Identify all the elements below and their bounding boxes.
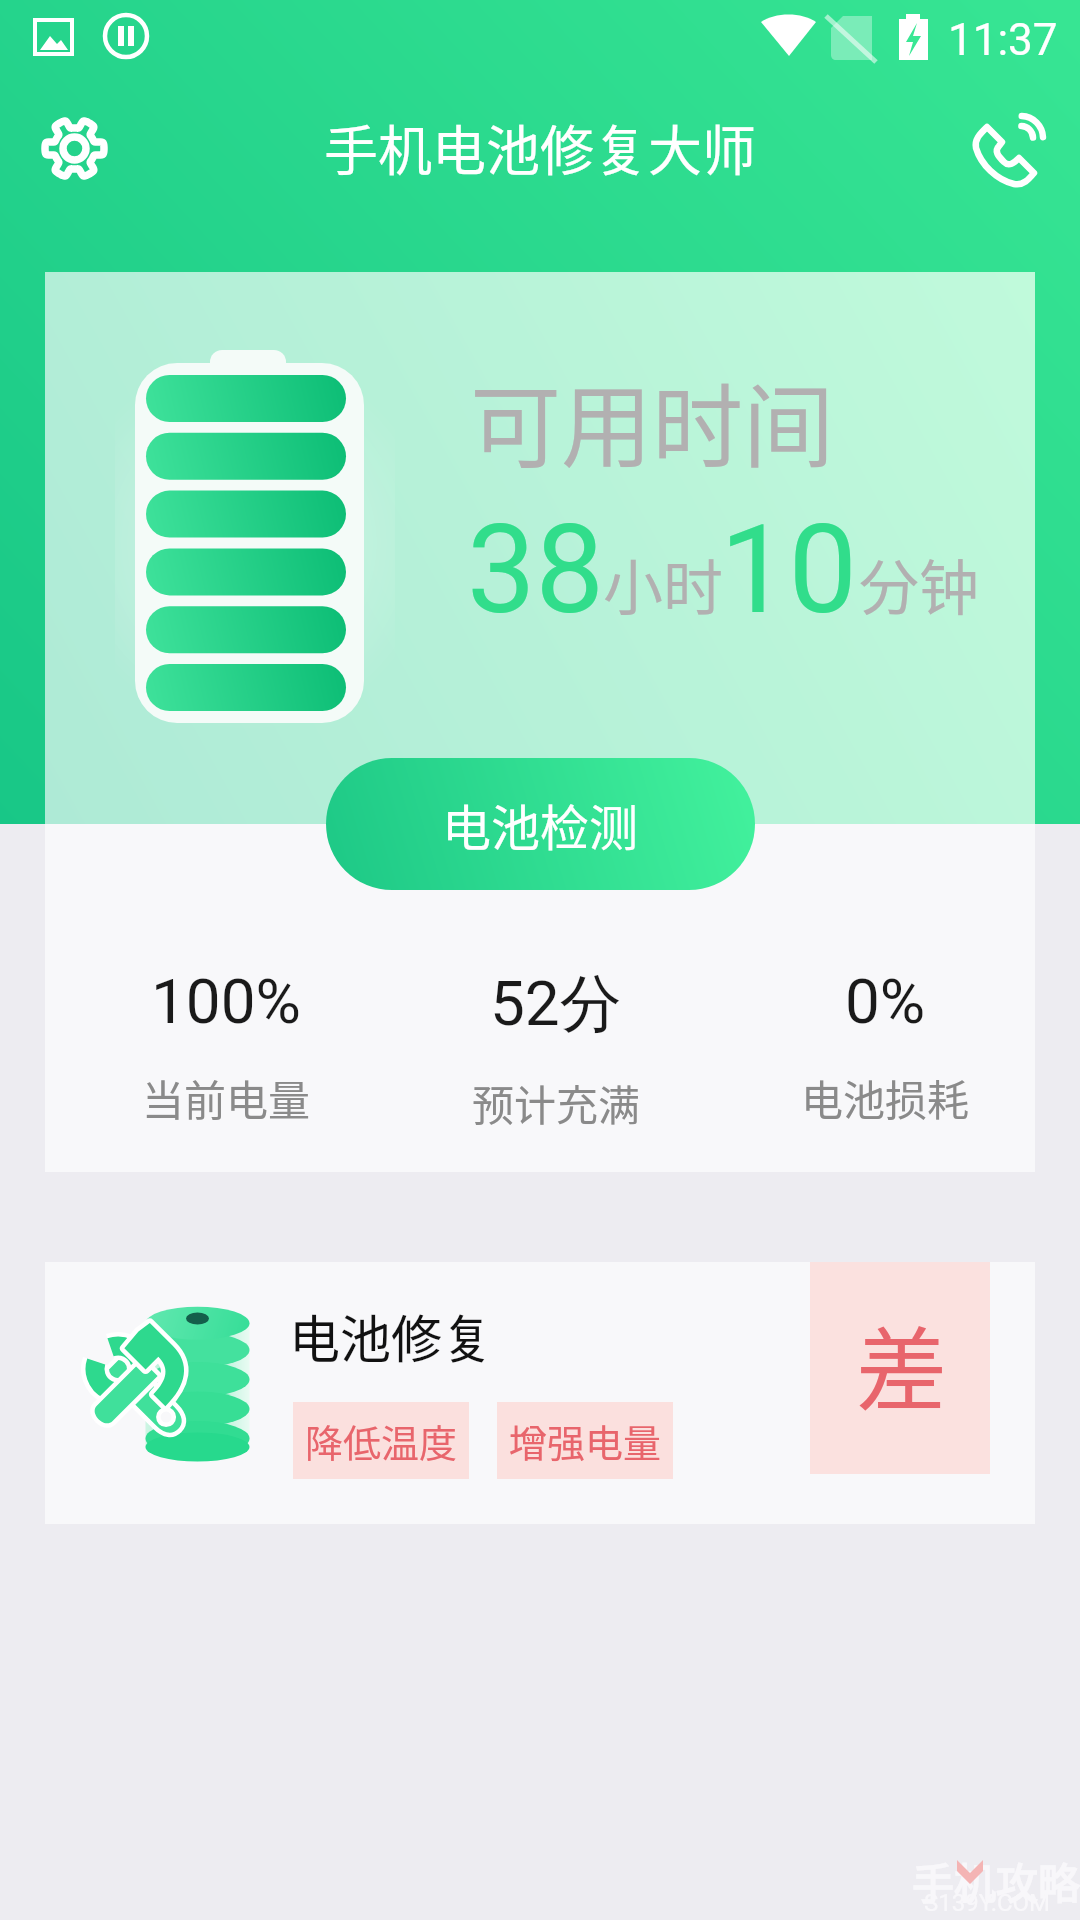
button[interactable]: 电池修复 <box>45 1262 1035 1524</box>
staticText: 0% <box>845 965 926 1038</box>
staticText: 38 <box>467 499 605 642</box>
staticText: 当前电量 <box>142 1067 311 1128</box>
staticText: S139Y.COM <box>924 1889 1051 1917</box>
staticText: 电池修复 <box>289 1299 494 1373</box>
staticText: 10 <box>720 499 858 642</box>
button[interactable]: 电池检测 <box>326 758 755 890</box>
staticText: 增强电量 <box>509 1413 662 1468</box>
staticText: 差 <box>856 1297 948 1429</box>
staticText: 电池检测 <box>442 789 639 860</box>
staticText: 11:37 <box>948 14 1058 66</box>
staticText: 手机攻略 <box>912 1850 1080 1911</box>
button[interactable]: Settings <box>30 104 120 194</box>
staticText: 预计充满 <box>472 1072 641 1133</box>
button[interactable]: 差 <box>810 1262 990 1474</box>
button[interactable]: 52分 <box>391 965 721 1133</box>
staticText: 分钟 <box>859 540 979 627</box>
button[interactable]: 降低温度 <box>293 1402 469 1479</box>
staticText: 100% <box>151 965 301 1038</box>
button[interactable]: 增强电量 <box>497 1402 673 1479</box>
staticText: 52分 <box>490 965 622 1043</box>
button[interactable]: 0% <box>720 965 1050 1128</box>
button[interactable]: 100% <box>61 965 391 1128</box>
staticText: 可用时间 <box>470 354 835 486</box>
staticText: 小时 <box>603 540 723 627</box>
staticText: 电池损耗 <box>801 1067 970 1128</box>
button[interactable]: Call <box>960 108 1050 198</box>
staticText: 手机电池修复大师 <box>324 108 756 186</box>
staticText: 降低温度 <box>305 1413 458 1468</box>
